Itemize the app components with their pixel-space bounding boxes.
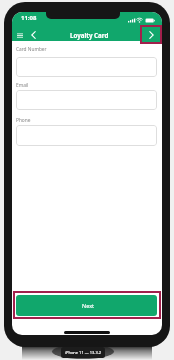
staticText: Email: [16, 82, 29, 89]
button[interactable]: [28, 30, 38, 40]
staticText: Card Number: [16, 46, 47, 53]
staticText: 11:08: [21, 14, 37, 22]
staticText: Next: [82, 302, 95, 309]
button[interactable]: [16, 125, 157, 146]
button[interactable]: [140, 25, 162, 44]
staticText: Phone: [16, 117, 31, 124]
staticText: Loyalty Card: [70, 31, 109, 39]
button[interactable]: [16, 90, 157, 110]
staticText: iPhone 11 — 13.3.2: [65, 350, 102, 355]
button[interactable]: [16, 57, 157, 77]
button[interactable]: [15, 30, 25, 40]
button[interactable]: Next: [16, 295, 157, 316]
